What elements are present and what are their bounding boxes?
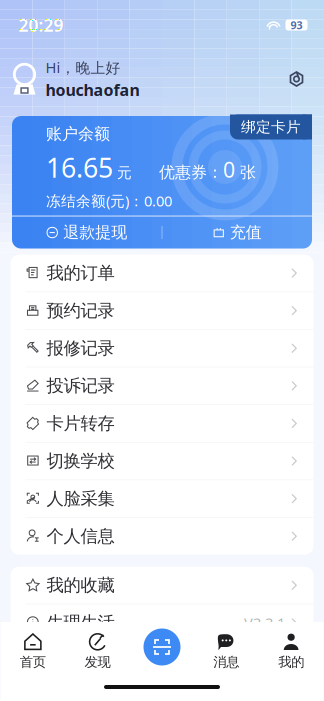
button[interactable]: 生理生活 xyxy=(10,604,313,641)
staticText: 冻结余额(元)：0.00 xyxy=(46,191,172,211)
staticText: 人脸采集 xyxy=(46,488,114,509)
button[interactable]: 我的订单 xyxy=(10,254,313,291)
button[interactable]: 我的收藏 xyxy=(10,567,313,604)
staticText: 切换学校 xyxy=(46,450,114,472)
button[interactable]: 设置 xyxy=(283,66,309,92)
button[interactable]: 发现 xyxy=(65,632,130,670)
button[interactable]: 消息 xyxy=(194,632,259,670)
button[interactable]: 切换学校 xyxy=(10,442,313,479)
staticText: V3.3.1 xyxy=(244,613,285,633)
staticText: houchaofan xyxy=(45,79,139,100)
button[interactable]: 充值 xyxy=(162,223,312,242)
staticText: 20:29 xyxy=(18,13,63,36)
staticText: 我的订单 xyxy=(46,262,114,284)
staticText: 投诉记录 xyxy=(46,375,114,396)
staticText: 元 xyxy=(113,164,132,182)
button[interactable]: 投诉记录 xyxy=(10,367,313,404)
staticText: 绑定卡片 xyxy=(241,118,301,136)
button[interactable]: 扫一扫 xyxy=(137,622,187,672)
staticText: 我的 xyxy=(278,654,304,670)
staticText: 优惠券： xyxy=(159,163,223,182)
staticText: 张 xyxy=(235,163,256,182)
staticText: 0 xyxy=(223,155,235,184)
button[interactable]: 个人信息 xyxy=(10,518,313,555)
staticText: 退款提现 xyxy=(63,223,127,242)
staticText: 16.65 xyxy=(46,150,113,185)
button[interactable]: 我的 xyxy=(259,632,324,670)
button[interactable]: 绑定卡片 xyxy=(230,116,312,138)
staticText: 发现 xyxy=(85,654,111,670)
staticText: 卡片转存 xyxy=(46,413,114,434)
staticText: 充值 xyxy=(230,223,262,242)
button[interactable]: 人脸采集 xyxy=(10,480,313,517)
staticText: 我的收藏 xyxy=(46,575,114,596)
button[interactable]: 报修记录 xyxy=(10,330,313,367)
staticText: 93 xyxy=(290,18,302,32)
button[interactable]: 首页 xyxy=(0,632,65,670)
button[interactable]: 预约记录 xyxy=(10,292,313,329)
staticText: 报修记录 xyxy=(46,338,114,359)
staticText: Hi，晚上好 xyxy=(45,58,120,77)
staticText: 消息 xyxy=(213,654,239,670)
staticText: 首页 xyxy=(20,654,46,670)
button[interactable]: 卡片转存 xyxy=(10,405,313,442)
staticText: 个人信息 xyxy=(46,526,114,547)
button[interactable]: 退款提现 xyxy=(12,223,161,242)
staticText: 预约记录 xyxy=(46,300,114,321)
staticText: 生理生活 xyxy=(46,612,114,633)
staticText: 账户余额 xyxy=(46,124,110,144)
